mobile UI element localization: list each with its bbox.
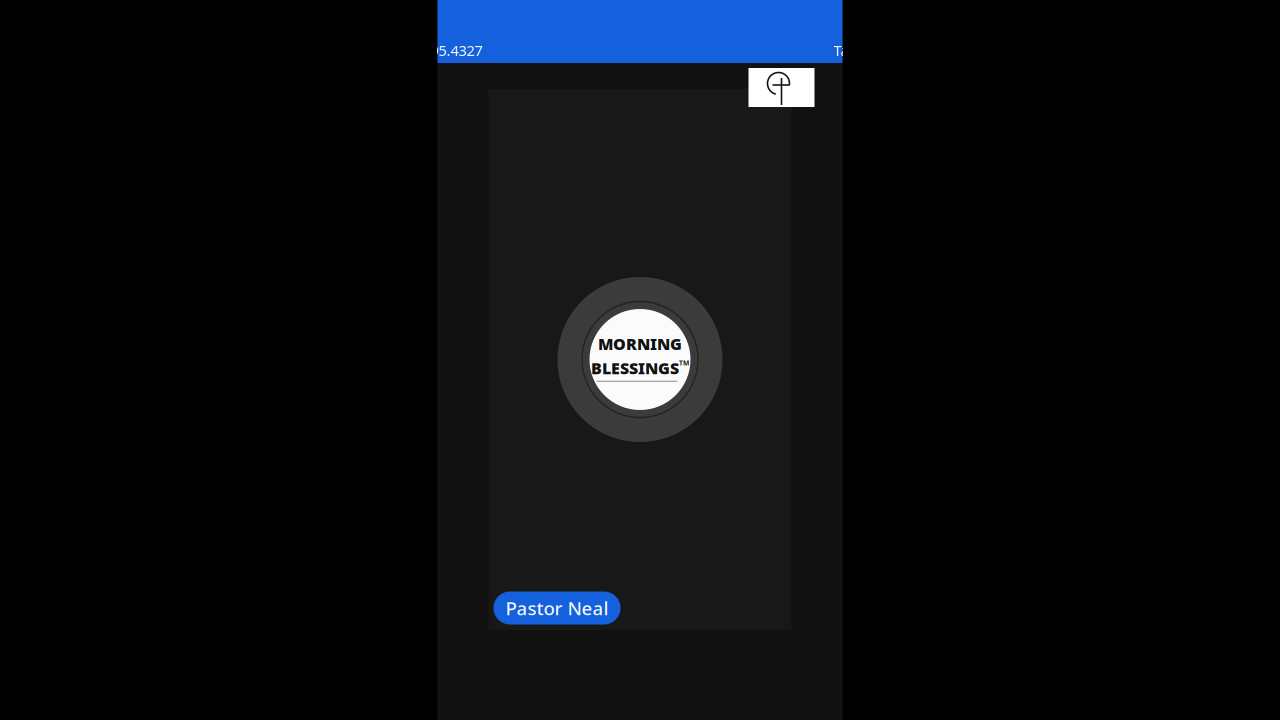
button[interactable]: Self view [748,68,814,107]
staticText: BLESSINGS [591,357,679,379]
staticText: TM [679,358,689,367]
staticText: 95.4327 [430,40,482,60]
staticText: Pastor Neal [505,596,608,620]
staticText: MORNING [598,333,682,354]
button[interactable]: Pastor Neal [493,591,620,624]
staticText: Tap [833,40,857,60]
